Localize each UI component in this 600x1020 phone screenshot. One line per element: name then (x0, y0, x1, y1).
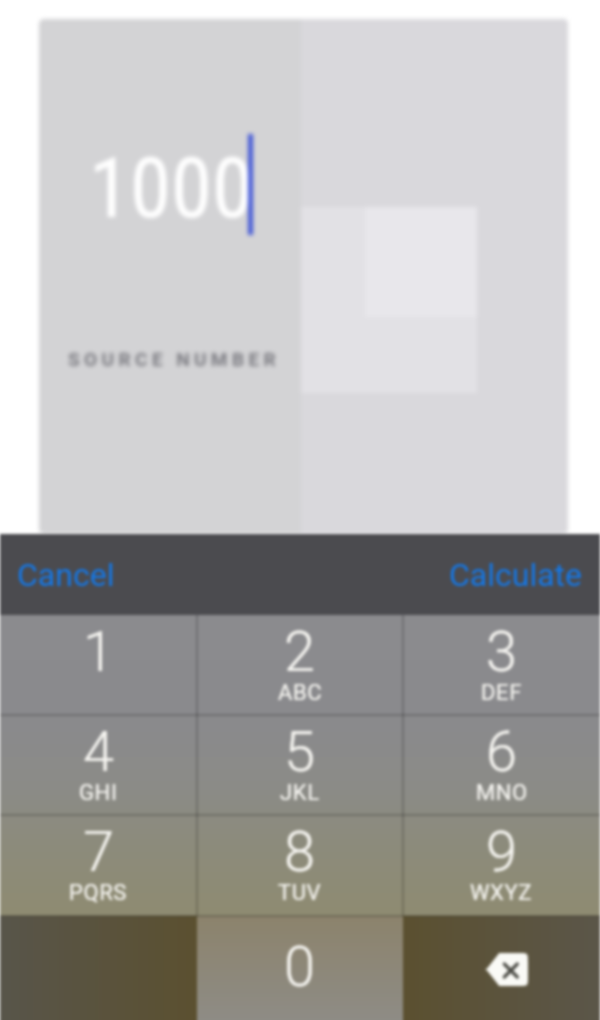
staticText: SOURCE NUMBER (68, 348, 281, 370)
staticText: JKL (280, 780, 320, 806)
staticText: Cancel (17, 556, 115, 594)
staticText: 1000 (89, 140, 253, 237)
staticText: 9 (486, 819, 518, 885)
button[interactable]: 0 (197, 916, 403, 1020)
staticText: 6 (486, 719, 518, 785)
staticText: TUV (278, 880, 322, 906)
button[interactable]: Blank key (0, 916, 197, 1020)
staticText: 4 (83, 719, 115, 785)
button[interactable]: 7 (0, 815, 197, 916)
staticText: 0 (284, 934, 316, 1000)
staticText: ABC (278, 680, 323, 706)
button[interactable]: 6 (403, 715, 600, 815)
button[interactable]: Cancel (0, 544, 132, 606)
staticText: PQRS (69, 880, 128, 906)
button[interactable]: 5 (197, 715, 403, 815)
button[interactable]: 3 (403, 615, 600, 715)
button[interactable]: Calculate (432, 544, 600, 606)
staticText: 1 (83, 619, 115, 685)
button[interactable]: 1 (0, 615, 197, 715)
staticText: 7 (83, 819, 115, 885)
staticText: GHI (79, 780, 118, 806)
staticText: 3 (486, 619, 518, 685)
button[interactable]: 9 (403, 815, 600, 916)
staticText: 5 (284, 719, 316, 785)
button[interactable]: 8 (197, 815, 403, 916)
button[interactable]: 2 (197, 615, 403, 715)
staticText: DEF (481, 680, 522, 706)
staticText: 2 (284, 619, 316, 685)
staticText: WXYZ (470, 880, 533, 906)
button[interactable]: 4 (0, 715, 197, 815)
button[interactable]: Backspace (403, 916, 600, 1020)
staticText: MNO (476, 780, 528, 806)
staticText: 8 (284, 819, 316, 885)
staticText: Calculate (449, 556, 583, 594)
